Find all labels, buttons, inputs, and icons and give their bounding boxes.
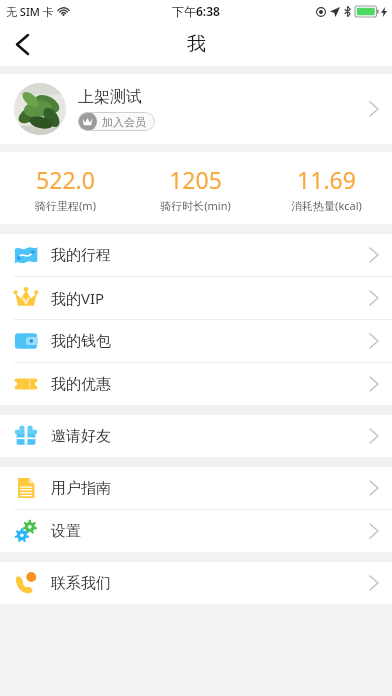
staticText: 1205 (169, 164, 222, 195)
button[interactable]: 我的钱包 (0, 320, 392, 362)
button[interactable]: 用户指南 (0, 467, 392, 509)
button[interactable]: 我的优惠 (0, 363, 392, 405)
staticText: 522.0 (36, 164, 95, 195)
staticText: 联系我们 (51, 574, 111, 593)
staticText: 设置 (51, 522, 81, 541)
button[interactable]: 1205 (130, 164, 261, 213)
staticText: 我 (187, 32, 206, 56)
button[interactable]: 我的VIP (0, 277, 392, 319)
button[interactable]: 522.0 (0, 164, 130, 213)
button[interactable]: 11.69 (261, 164, 392, 213)
button[interactable]: 邀请好友 (0, 415, 392, 457)
staticText: 加入会员 (102, 115, 146, 129)
button[interactable]: 上架测试 (0, 74, 392, 144)
staticText: 用户指南 (51, 479, 111, 498)
button[interactable]: 联系我们 (0, 562, 392, 604)
button[interactable]: 设置 (0, 510, 392, 552)
staticText: 我的优惠 (51, 375, 111, 394)
staticText: 11.69 (297, 164, 356, 195)
staticText: 无 SIM 卡 (6, 4, 54, 19)
staticText: 消耗热量(kcal) (291, 198, 362, 213)
button[interactable]: Back (0, 22, 44, 66)
staticText: 我的钱包 (51, 332, 111, 351)
staticText: 下午6:38 (172, 3, 220, 19)
staticText: 我的VIP (51, 288, 105, 308)
button[interactable]: 加入会员 (78, 112, 155, 131)
button[interactable]: 我的行程 (0, 234, 392, 276)
staticText: 骑行里程(m) (35, 198, 96, 213)
staticText: 上架测试 (78, 87, 142, 107)
staticText: 骑行时长(min) (160, 198, 231, 213)
staticText: 我的行程 (51, 246, 111, 265)
staticText: 邀请好友 (51, 427, 111, 446)
